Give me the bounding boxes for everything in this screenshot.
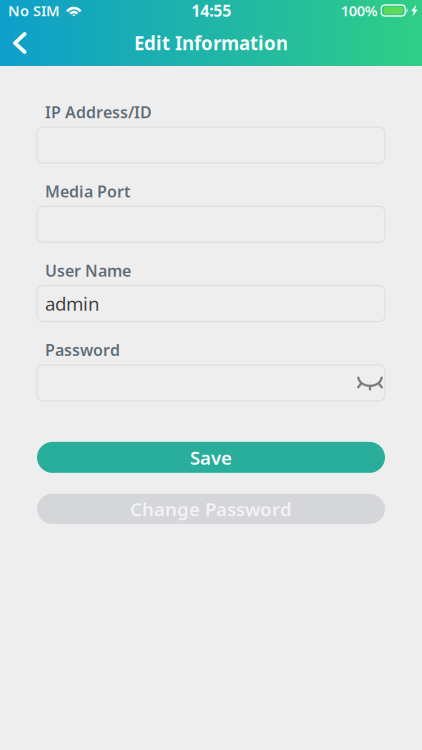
- button[interactable]: Show password: [347, 366, 383, 399]
- staticText: 100%: [341, 1, 378, 20]
- button[interactable]: Change Password: [37, 494, 385, 524]
- staticText: admin: [45, 291, 100, 316]
- staticText: Edit Information: [134, 31, 288, 55]
- staticText: Save: [190, 445, 232, 470]
- button[interactable]: Back: [0, 21, 39, 65]
- staticText: Media Port: [45, 181, 130, 202]
- staticText: 14:55: [191, 0, 231, 21]
- button[interactable]: Save: [37, 442, 385, 473]
- staticText: User Name: [45, 260, 131, 281]
- staticText: Change Password: [130, 496, 292, 521]
- staticText: Password: [45, 339, 120, 360]
- staticText: No SIM: [8, 1, 60, 20]
- staticText: IP Address/ID: [45, 101, 152, 123]
